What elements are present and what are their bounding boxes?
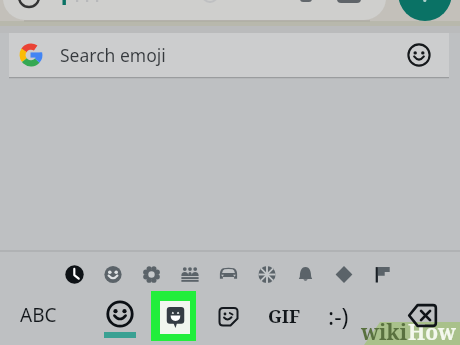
staticText: Search emoji (60, 43, 166, 67)
button[interactable]: Send (410, 0, 460, 23)
button[interactable]: Bitmoji stickers (151, 291, 196, 341)
staticText: :-) (328, 300, 349, 331)
button[interactable]: Search emoji (9, 33, 449, 77)
button[interactable]: Objects (288, 256, 324, 294)
button[interactable]: Activities (249, 256, 285, 294)
button[interactable]: Smileys (95, 256, 131, 294)
button[interactable]: Symbols (326, 256, 362, 294)
button[interactable]: Backspace (408, 304, 437, 327)
button[interactable]: Flags (365, 256, 401, 294)
staticText: ABC (20, 302, 57, 328)
button[interactable]: Recent (57, 256, 93, 294)
button[interactable]: People (172, 256, 208, 294)
button[interactable]: Nature (134, 256, 170, 294)
button[interactable]: :-) (318, 297, 358, 333)
button[interactable]: Emoji search (403, 39, 435, 71)
staticText: wiki (361, 318, 408, 345)
staticText: GIF (268, 304, 301, 329)
button[interactable]: GIF (262, 300, 306, 332)
staticText: How (408, 318, 457, 345)
button[interactable]: ABC (8, 299, 68, 331)
button[interactable]: Emoji (96, 298, 144, 345)
button[interactable]: Message input (2, 0, 372, 20)
button[interactable]: Travel (211, 256, 247, 294)
button[interactable]: Stickers (212, 301, 244, 331)
